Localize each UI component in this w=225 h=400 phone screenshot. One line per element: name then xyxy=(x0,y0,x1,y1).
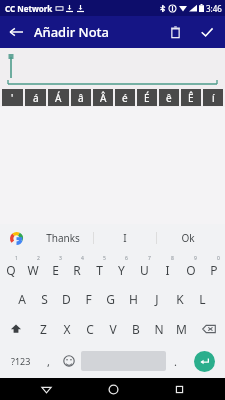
staticText: CC Network xyxy=(5,3,53,14)
button[interactable]: L xyxy=(191,284,214,314)
staticText: J xyxy=(155,291,159,307)
staticText: P xyxy=(210,262,218,278)
button[interactable]: 4 xyxy=(66,252,88,284)
button[interactable]: í xyxy=(203,89,223,106)
button[interactable]: Á xyxy=(48,89,69,106)
staticText: H xyxy=(129,291,138,307)
staticText: R xyxy=(73,262,81,278)
staticText: B xyxy=(132,321,140,337)
button[interactable]: Back xyxy=(0,16,32,48)
button[interactable]: 5 xyxy=(88,252,110,284)
button[interactable]: . xyxy=(166,344,185,378)
button[interactable]: D xyxy=(55,284,77,314)
button[interactable]: S xyxy=(33,284,55,314)
staticText: N xyxy=(154,321,164,337)
staticText: Ok xyxy=(181,231,195,245)
staticText: E xyxy=(52,262,59,278)
staticText: Y xyxy=(118,262,125,278)
staticText: 3 xyxy=(59,255,62,262)
staticText: ê xyxy=(166,91,172,105)
button[interactable]: C xyxy=(78,314,101,344)
button[interactable]: G xyxy=(99,284,122,314)
button[interactable]: J xyxy=(145,284,168,314)
staticText: 7 xyxy=(148,255,151,262)
staticText: 4 xyxy=(81,255,84,262)
button[interactable]: I xyxy=(94,224,156,252)
staticText: Z xyxy=(40,321,47,337)
button[interactable]: 8 xyxy=(156,252,179,284)
button[interactable]: 1 xyxy=(0,252,22,284)
staticText: á xyxy=(33,91,39,105)
button[interactable]: 9 xyxy=(179,252,202,284)
staticText: A xyxy=(18,291,26,307)
button[interactable]: M xyxy=(170,314,193,344)
button[interactable]: 7 xyxy=(133,252,156,284)
button[interactable]: Back xyxy=(26,378,66,400)
button[interactable]: â xyxy=(71,89,91,106)
button[interactable]: Â xyxy=(93,89,113,106)
button[interactable]: X xyxy=(55,314,78,344)
staticText: 9 xyxy=(194,255,197,262)
staticText: 0 xyxy=(217,255,220,262)
staticText: S xyxy=(41,291,48,307)
button[interactable]: , xyxy=(39,344,57,378)
staticText: í xyxy=(212,91,215,105)
button[interactable]: Thanks xyxy=(32,224,93,252)
button[interactable]: Ê xyxy=(181,89,201,106)
button[interactable]: ?123 xyxy=(2,344,39,378)
staticText: ?123 xyxy=(11,355,31,367)
button[interactable]: Recents xyxy=(159,378,199,400)
button[interactable]: A xyxy=(11,284,33,314)
staticText: G xyxy=(106,291,115,307)
button[interactable]: Save xyxy=(191,16,223,48)
staticText: F xyxy=(85,291,92,307)
button[interactable]: F xyxy=(77,284,99,314)
button[interactable]: Home xyxy=(93,378,133,400)
staticText: é xyxy=(122,91,128,105)
button[interactable]: é xyxy=(115,89,135,106)
button[interactable]: á xyxy=(25,89,46,106)
staticText: Q xyxy=(6,262,16,278)
staticText: D xyxy=(62,291,71,307)
staticText: V xyxy=(109,321,117,337)
staticText: I xyxy=(123,231,127,245)
button[interactable]: Delete xyxy=(159,16,191,48)
button[interactable]: ê xyxy=(159,89,179,106)
staticText: É xyxy=(144,91,150,105)
button[interactable]: Enter xyxy=(185,344,223,378)
staticText: . xyxy=(174,354,177,369)
staticText: Â xyxy=(100,91,107,105)
staticText: 2 xyxy=(37,255,40,262)
staticText: 8 xyxy=(171,255,174,262)
button[interactable]: 2 xyxy=(22,252,44,284)
button[interactable]: É xyxy=(137,89,157,106)
button[interactable]: 3 xyxy=(44,252,66,284)
button[interactable]: V xyxy=(101,314,124,344)
staticText: O xyxy=(186,262,196,278)
button[interactable]: H xyxy=(122,284,145,314)
staticText: 1 xyxy=(15,255,18,262)
staticText: 5 xyxy=(103,255,106,262)
staticText: , xyxy=(47,354,50,369)
button[interactable]: Z xyxy=(32,314,55,344)
button[interactable]: 6 xyxy=(110,252,133,284)
staticText: Á xyxy=(55,91,62,105)
button[interactable]: Ok xyxy=(157,224,219,252)
staticText: 3:46 xyxy=(206,3,222,14)
button[interactable]: Shift xyxy=(0,314,32,344)
staticText: Thanks xyxy=(46,231,80,245)
button[interactable]: B xyxy=(124,314,147,344)
button[interactable]: N xyxy=(147,314,170,344)
staticText: Ê xyxy=(188,91,194,105)
button[interactable]: ' xyxy=(2,89,23,106)
button[interactable]: Google xyxy=(0,224,32,252)
staticText: 6 xyxy=(125,255,128,262)
staticText: â xyxy=(78,91,84,105)
button[interactable]: Emoji xyxy=(57,344,81,378)
staticText: X xyxy=(63,321,71,337)
button[interactable]: Backspace xyxy=(193,314,225,344)
staticText: I xyxy=(165,262,170,278)
button[interactable]: K xyxy=(168,284,191,314)
button[interactable]: 0 xyxy=(202,252,225,284)
